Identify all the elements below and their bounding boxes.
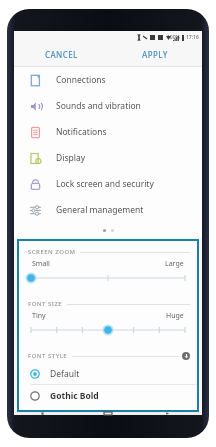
staticText: Connections <box>56 74 106 86</box>
staticText: Lock screen and security <box>56 178 154 190</box>
button[interactable]: Default <box>19 363 197 384</box>
staticText: Notifications <box>56 126 107 138</box>
staticText: SCREEN ZOOM <box>28 248 76 256</box>
staticText: Huge <box>166 311 184 321</box>
button[interactable]: Display <box>14 145 202 171</box>
button[interactable]: Gothic Bold <box>19 385 197 406</box>
staticText: 17:16 <box>186 34 199 41</box>
staticText: FONT STYLE <box>28 352 68 360</box>
button[interactable]: Connections <box>14 67 202 93</box>
staticText: Gothic Bold <box>50 390 99 402</box>
staticText: Small <box>32 259 50 269</box>
button[interactable]: Home <box>76 412 139 415</box>
button[interactable]: Sounds and vibration <box>14 93 202 119</box>
button[interactable]: CANCEL <box>14 43 108 66</box>
staticText: Large <box>165 259 184 269</box>
staticText: FONT SIZE <box>28 300 63 308</box>
staticText: Sounds and vibration <box>56 100 141 112</box>
staticText: Tiny <box>32 311 46 321</box>
button[interactable]: Back <box>139 412 202 415</box>
button[interactable]: Recents <box>14 412 76 415</box>
button[interactable]: Notifications <box>14 119 202 145</box>
button[interactable]: Lock screen and security <box>14 171 202 197</box>
staticText: CANCEL <box>45 49 78 60</box>
staticText: 100% <box>167 34 180 41</box>
staticText: General management <box>56 204 144 216</box>
staticText: APPLY <box>142 49 168 60</box>
staticText: Display <box>56 152 85 164</box>
button[interactable]: APPLY <box>108 43 202 66</box>
button[interactable]: General management <box>14 197 202 223</box>
button[interactable]: Download fonts <box>182 352 190 360</box>
staticText: Default <box>50 368 80 380</box>
button[interactable]: Slider <box>28 323 188 337</box>
button[interactable]: Slider <box>28 271 188 285</box>
